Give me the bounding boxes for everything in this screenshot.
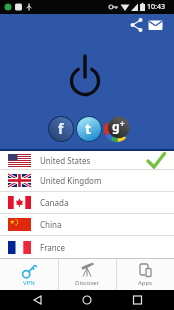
staticText: Apps (138, 279, 153, 287)
staticText: France (40, 242, 66, 253)
button[interactable]: f (48, 116, 74, 142)
button[interactable] (58, 290, 116, 310)
button[interactable]: t (76, 116, 102, 142)
button[interactable] (116, 290, 174, 310)
button[interactable]: g (104, 116, 130, 142)
button[interactable]: Apps (117, 259, 174, 290)
staticText: 10:43 (147, 2, 165, 12)
staticText: China (40, 219, 62, 230)
button[interactable]: Discover (59, 259, 116, 290)
staticText: VPN (23, 279, 35, 287)
button[interactable] (147, 17, 165, 33)
staticText: Discover (75, 279, 100, 287)
staticText: + (120, 118, 125, 129)
button[interactable]: Canada (0, 192, 174, 214)
button[interactable]: United Kingdom (0, 170, 174, 192)
staticText: United States (40, 155, 91, 166)
button[interactable]: VPN (0, 259, 58, 290)
button[interactable]: France (0, 236, 174, 258)
staticText: g (112, 118, 120, 134)
button[interactable]: United States (0, 151, 174, 170)
button[interactable]: China (0, 214, 174, 236)
button[interactable] (66, 50, 104, 98)
button[interactable] (129, 17, 145, 33)
staticText: t (85, 119, 92, 138)
staticText: f (58, 119, 64, 138)
staticText: United Kingdom (40, 175, 102, 186)
staticText: Canada (40, 197, 69, 208)
button[interactable] (0, 290, 58, 310)
